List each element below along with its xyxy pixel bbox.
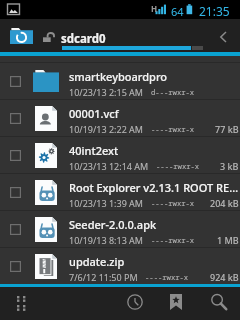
staticText: d---rwxr-x [151,87,195,97]
button[interactable]: Seeder-2.0.0.apk [0,210,240,247]
staticText: 77 kB [215,123,239,135]
button[interactable]: update.zip [0,247,240,284]
button[interactable]: Back [214,29,232,45]
staticText: 1 MB [217,234,239,246]
staticText: 40int2ext [69,143,119,158]
button[interactable]: 00001.vcf [0,99,240,136]
staticText: H [151,3,158,14]
button[interactable]: Bookmarks [163,289,189,315]
staticText: ----rwxr-x [151,235,195,245]
staticText: Seeder-2.0.0.apk [69,217,157,232]
staticText: 924 kB [210,271,239,283]
staticText: 00001.vcf [69,106,119,121]
staticText: 10/19/13 2:22 AM [69,123,144,135]
staticText: 10/23/13 12:14 AM [69,160,149,172]
staticText: ----rwxr-x [151,124,195,134]
button[interactable]: Menu [10,290,32,317]
staticText: Root Explorer v2.13.1 ROOT REXPLORER [69,180,239,195]
staticText: ----rwxr-x [156,161,200,171]
staticText: ----rwxr-x [145,272,189,282]
staticText: 7/6/12 11:50 PM [69,271,138,283]
staticText: smartkeyboardpro [69,69,168,84]
button[interactable]: Toggle read write [40,30,56,44]
button[interactable]: 40int2ext [0,136,240,173]
staticText: sdcard0 [61,31,106,47]
staticText: 64 [171,4,184,19]
staticText: 10/19/13 8:13 AM [69,234,144,246]
staticText: 10/23/13 2:15 AM [69,86,144,98]
staticText: 21:35 [199,3,230,19]
staticText: 3 kB [220,160,239,172]
staticText: update.zip [69,254,125,269]
button[interactable]: Recent [122,289,148,315]
staticText: ----rwxr-x [151,198,195,208]
button[interactable]: smartkeyboardpro [0,62,240,99]
button[interactable]: Root Explorer [7,26,33,46]
staticText: 204 kB [210,197,239,209]
button[interactable]: Root Explorer v2.13.1 ROOT REXPLORER [0,173,240,210]
button[interactable]: Search [206,289,232,315]
staticText: 10/23/13 1:39 AM [69,197,144,209]
